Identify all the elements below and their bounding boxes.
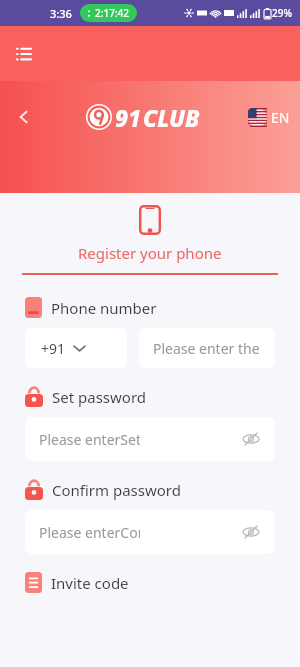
staticText: 2:17:42 <box>95 6 130 20</box>
button[interactable]: Please enter the phone number <box>139 328 275 368</box>
button[interactable]: Menu <box>10 40 38 68</box>
button[interactable]: Back <box>8 101 40 133</box>
button[interactable]: EN <box>246 106 292 129</box>
button[interactable]: Show password <box>241 522 261 542</box>
staticText: Please enterSet password <box>39 430 140 449</box>
staticText: EN <box>271 108 290 127</box>
staticText: 29% <box>272 6 292 20</box>
button[interactable]: Please enterSet password <box>25 417 275 461</box>
staticText: +91 <box>41 339 66 358</box>
staticText: Confirm password <box>52 480 181 500</box>
button[interactable]: Please enterConfirm password <box>25 510 275 554</box>
staticText: Register your phone <box>78 243 222 263</box>
button[interactable]: Show password <box>241 429 261 449</box>
button[interactable]: +91 <box>25 328 127 368</box>
staticText: CLUB <box>143 102 200 133</box>
staticText: Invite code <box>51 573 129 593</box>
staticText: 3:36 <box>50 6 72 21</box>
staticText: Please enter the phone number <box>153 339 261 358</box>
staticText: Please enterConfirm password <box>39 523 140 542</box>
staticText: Set password <box>52 387 147 407</box>
staticText: Phone number <box>51 298 157 318</box>
staticText: 91 <box>115 102 141 133</box>
